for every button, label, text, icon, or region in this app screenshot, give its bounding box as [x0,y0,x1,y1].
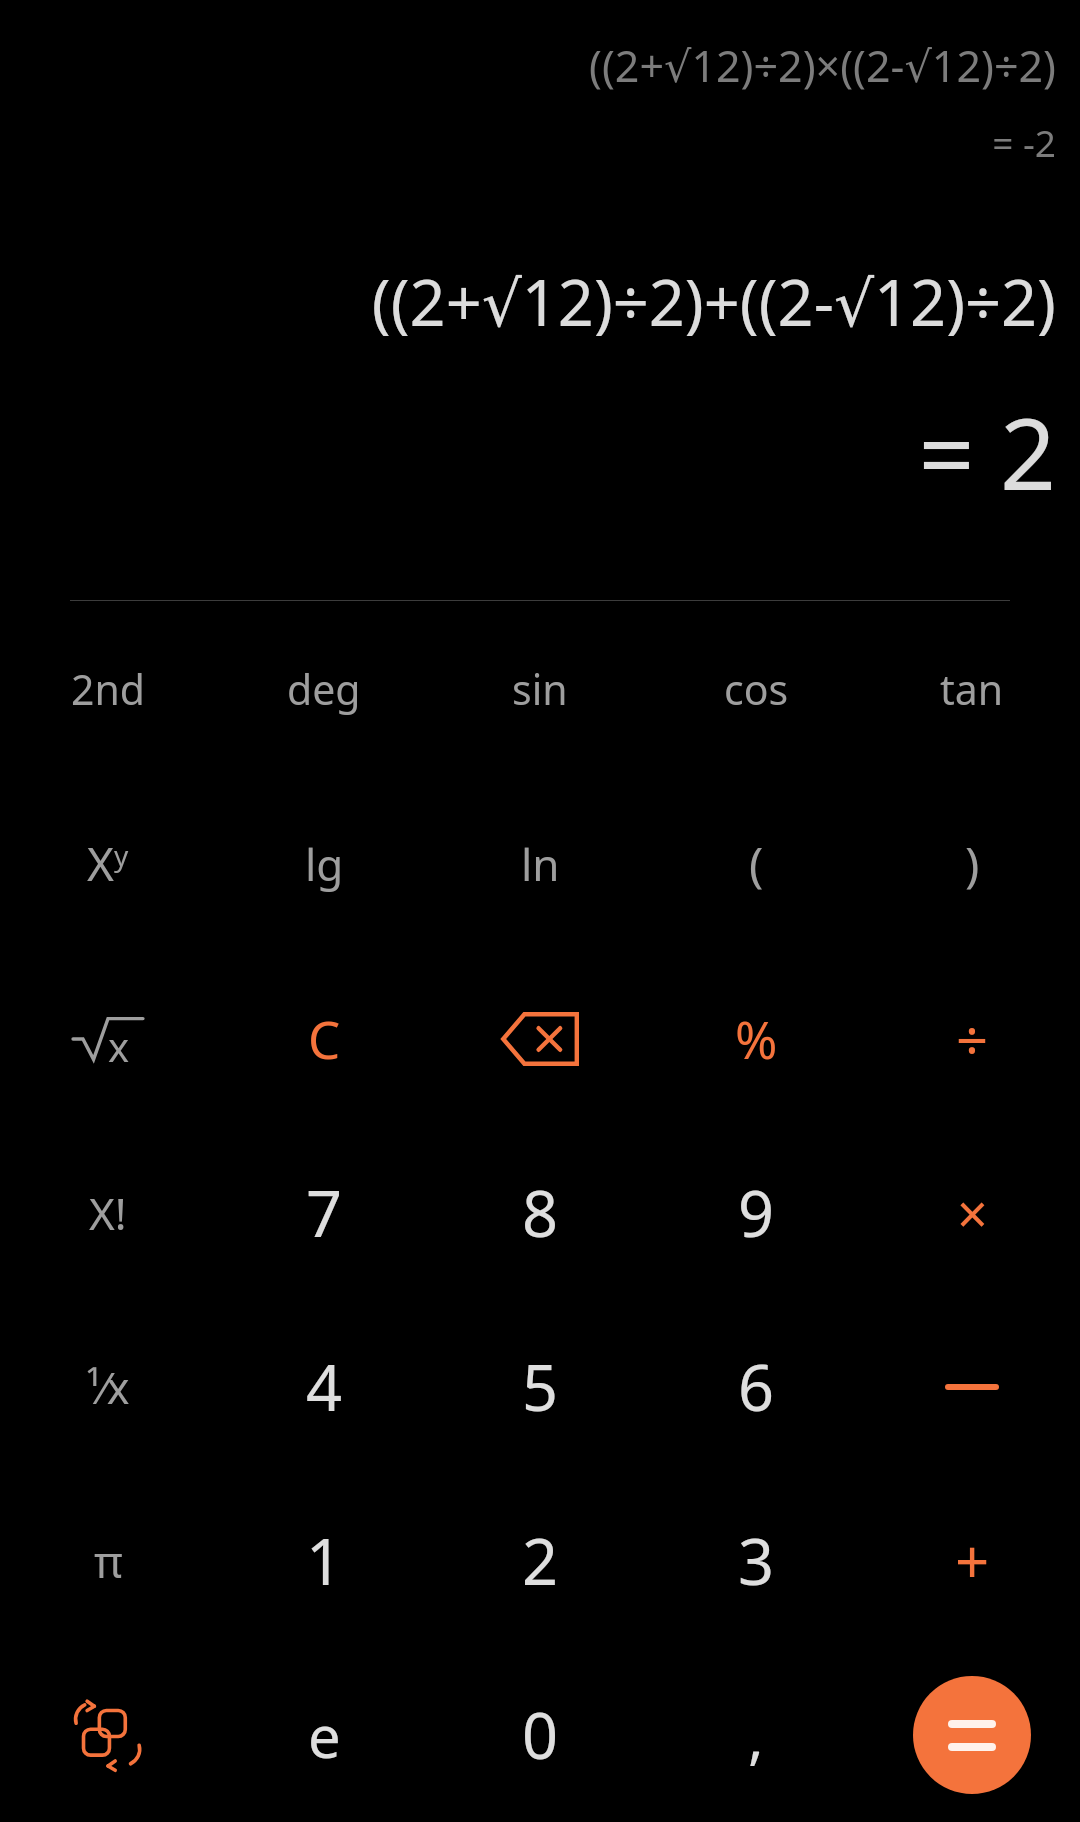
staticText: 1 [306,1518,343,1604]
button[interactable]: deg [216,601,432,776]
staticText: 9 [738,1170,775,1256]
button[interactable]: Xy [0,776,216,951]
staticText: e [308,1696,341,1775]
staticText: , [748,1696,764,1775]
staticText: = -2 [28,117,1056,167]
button[interactable]: ( [648,776,864,951]
staticText: deg [287,661,361,717]
staticText: 5 [522,1344,559,1430]
staticText: ((2+√12)÷2)+((2-√12)÷2) [28,259,1056,345]
button[interactable]: Backspace [432,951,648,1126]
staticText: lg [305,834,344,894]
button[interactable]: π [0,1474,216,1648]
staticText: π [94,1531,123,1591]
staticText: X! [89,1183,127,1243]
staticText: sin [512,661,568,717]
staticText: 4 [306,1344,343,1430]
staticText: 2 [522,1518,559,1604]
staticText: x [108,1019,130,1069]
button[interactable]: ÷ [864,951,1080,1126]
button[interactable]: cos [648,601,864,776]
staticText: × [957,1176,988,1250]
staticText: ( [749,831,764,896]
button[interactable]: ¹⁄x [0,1300,216,1474]
button[interactable]: e [216,1648,432,1822]
staticText: ((2+√12)÷2)×((2-√12)÷2) [28,36,1056,95]
button[interactable]: tan [864,601,1080,776]
staticText: tan [940,661,1004,717]
button[interactable]: C [216,951,432,1126]
staticText: cos [724,661,789,717]
staticText: ÷ [956,1001,989,1077]
staticText: ln [521,834,560,894]
staticText: 7 [306,1170,343,1256]
button[interactable]: 0 [432,1648,648,1822]
button[interactable]: , [648,1648,864,1822]
staticText: 6 [738,1344,775,1430]
button[interactable]: sin [432,601,648,776]
button[interactable]: 8 [432,1126,648,1300]
button[interactable]: ) [864,776,1080,951]
staticText: ¹⁄x [86,1358,130,1417]
button[interactable]: ln [432,776,648,951]
button[interactable]: 9 [648,1126,864,1300]
button[interactable]: 5 [432,1300,648,1474]
button[interactable]: 3 [648,1474,864,1648]
staticText: 3 [738,1518,775,1604]
staticText: % [735,1004,778,1073]
other: Equals [913,1676,1031,1794]
staticText: Xy [87,832,129,895]
button[interactable]: 4 [216,1300,432,1474]
button[interactable]: X! [0,1126,216,1300]
button[interactable]: % [648,951,864,1126]
button[interactable]: 2nd [0,601,216,776]
button[interactable]: Minus [864,1300,1080,1474]
button[interactable]: 7 [216,1126,432,1300]
button[interactable]: Equals [864,1648,1080,1822]
button[interactable]: 6 [648,1300,864,1474]
staticText: 2nd [71,661,146,717]
button[interactable]: Unit converter [0,1648,216,1822]
button[interactable]: + [864,1474,1080,1648]
staticText: C [308,1004,341,1073]
staticText: 8 [522,1170,559,1256]
staticText: + [955,1520,990,1602]
button[interactable]: lg [216,776,432,951]
button[interactable]: 2 [432,1474,648,1648]
staticText: ) [965,831,980,896]
button[interactable]: Square root [0,951,216,1126]
staticText: = 2 [28,385,1056,518]
button[interactable]: 1 [216,1474,432,1648]
staticText: 0 [522,1692,559,1778]
button[interactable]: × [864,1126,1080,1300]
